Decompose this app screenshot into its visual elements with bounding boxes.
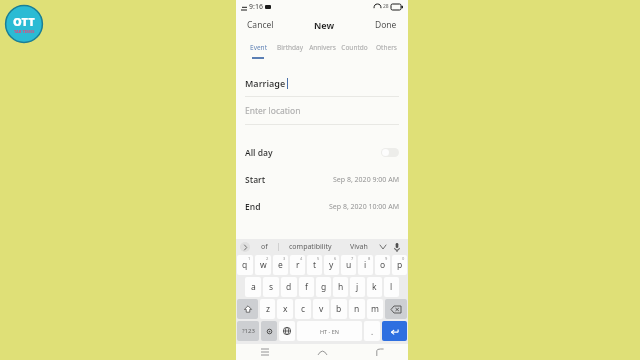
staticText: x xyxy=(283,303,288,315)
button[interactable]: k xyxy=(367,277,382,297)
other: All day toggle xyxy=(381,148,399,157)
staticText: h xyxy=(338,281,344,293)
button[interactable]: d xyxy=(281,277,297,297)
staticText: Marriage xyxy=(245,77,286,89)
button[interactable]: s xyxy=(263,277,279,297)
staticText: g xyxy=(321,281,327,293)
button[interactable]: h xyxy=(333,277,348,297)
staticText: 1 xyxy=(248,256,251,261)
button[interactable]: n xyxy=(349,299,365,319)
button[interactable]: End xyxy=(236,193,408,220)
staticText: End xyxy=(245,201,261,213)
button[interactable]: of xyxy=(250,242,278,252)
button[interactable]: Enter xyxy=(382,321,407,341)
staticText: HT - EN xyxy=(320,328,340,335)
staticText: b xyxy=(336,303,342,315)
staticText: u xyxy=(346,259,352,271)
button[interactable]: Start xyxy=(236,166,408,193)
staticText: e xyxy=(278,259,283,271)
button[interactable]: g xyxy=(316,277,331,297)
button[interactable]: All day xyxy=(236,139,408,166)
button[interactable]: u xyxy=(341,255,356,275)
button[interactable]: Recent apps xyxy=(236,344,294,360)
staticText: d xyxy=(286,281,292,293)
button[interactable]: v xyxy=(313,299,329,319)
button[interactable]: b xyxy=(331,299,347,319)
button[interactable]: Change language xyxy=(279,321,295,341)
button[interactable]: Cancel xyxy=(245,17,276,33)
staticText: 28 xyxy=(383,3,389,10)
button[interactable]: Annivers xyxy=(306,37,338,57)
staticText: compatibility xyxy=(289,242,332,252)
staticText: l xyxy=(390,281,393,293)
button[interactable]: compatibility xyxy=(279,242,341,252)
button[interactable]: . xyxy=(364,321,380,341)
button[interactable]: Settings xyxy=(261,321,277,341)
button[interactable]: Others xyxy=(370,37,402,57)
button[interactable]: l xyxy=(384,277,399,297)
button[interactable]: Birthday xyxy=(274,37,306,57)
button[interactable]: Enter location xyxy=(245,105,399,117)
staticText: v xyxy=(319,303,324,315)
staticText: k xyxy=(372,281,377,293)
staticText: q xyxy=(242,259,248,271)
staticText: . xyxy=(371,326,374,337)
staticText: Cancel xyxy=(247,19,274,31)
button[interactable]: c xyxy=(295,299,311,319)
button[interactable]: o xyxy=(375,255,390,275)
staticText: ?123 xyxy=(242,327,255,335)
staticText: i xyxy=(364,259,367,271)
button[interactable]: Expand suggestions xyxy=(240,242,250,252)
button[interactable]: New xyxy=(312,17,337,33)
button[interactable]: j xyxy=(350,277,365,297)
button[interactable]: p xyxy=(392,255,407,275)
button[interactable]: Back xyxy=(351,344,408,360)
button[interactable]: f xyxy=(299,277,314,297)
staticText: f xyxy=(305,281,308,293)
staticText: y xyxy=(329,259,334,271)
staticText: 3 xyxy=(283,256,286,261)
staticText: r xyxy=(296,259,300,271)
staticText: Event xyxy=(250,43,267,52)
staticText: Annivers xyxy=(309,43,336,52)
staticText: TAB TIMES xyxy=(14,29,35,34)
staticText: OTT xyxy=(13,14,35,29)
staticText: o xyxy=(380,259,386,271)
button[interactable]: q xyxy=(237,255,253,275)
staticText: New xyxy=(314,19,335,31)
staticText: t xyxy=(313,259,317,271)
staticText: n xyxy=(354,303,360,315)
button[interactable]: Shift xyxy=(237,299,258,319)
button[interactable]: w xyxy=(255,255,271,275)
button[interactable]: More suggestions xyxy=(376,239,390,255)
button[interactable]: Done xyxy=(373,17,399,33)
button[interactable]: i xyxy=(358,255,373,275)
button[interactable]: Backspace xyxy=(385,299,407,319)
button[interactable]: Countdo xyxy=(338,37,370,57)
button[interactable]: r xyxy=(290,255,305,275)
button[interactable]: e xyxy=(273,255,288,275)
button[interactable]: t xyxy=(307,255,322,275)
staticText: Birthday xyxy=(277,43,303,52)
button[interactable]: Voice input xyxy=(390,239,404,255)
staticText: 6 xyxy=(334,256,337,261)
button[interactable]: Vivah xyxy=(341,242,376,252)
staticText: All day xyxy=(245,147,273,159)
staticText: Done xyxy=(375,19,397,31)
button[interactable]: m xyxy=(367,299,383,319)
button[interactable]: HT - EN xyxy=(297,321,362,341)
button[interactable]: Event xyxy=(242,37,274,57)
staticText: 2 xyxy=(266,256,269,261)
staticText: 5 xyxy=(317,256,320,261)
button[interactable]: y xyxy=(324,255,339,275)
button[interactable]: a xyxy=(245,277,261,297)
button[interactable]: z xyxy=(260,299,275,319)
staticText: m xyxy=(371,303,379,315)
button[interactable]: Home xyxy=(294,344,351,360)
staticText: 4 xyxy=(300,256,303,261)
button[interactable]: ?123 xyxy=(237,321,259,341)
button[interactable]: x xyxy=(277,299,293,319)
staticText: of xyxy=(261,242,268,252)
staticText: p xyxy=(397,259,403,271)
staticText: 9 xyxy=(385,256,388,261)
